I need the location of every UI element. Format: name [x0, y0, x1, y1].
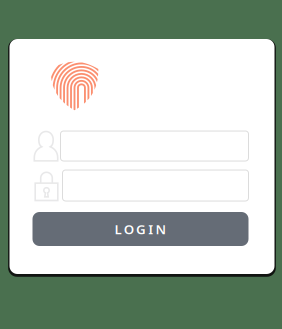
staticText: N: [156, 220, 167, 238]
button[interactable]: L: [32, 212, 248, 246]
staticText: I: [148, 220, 153, 238]
staticText: L: [114, 220, 121, 238]
staticText: G: [136, 220, 146, 238]
staticText: O: [124, 220, 134, 238]
